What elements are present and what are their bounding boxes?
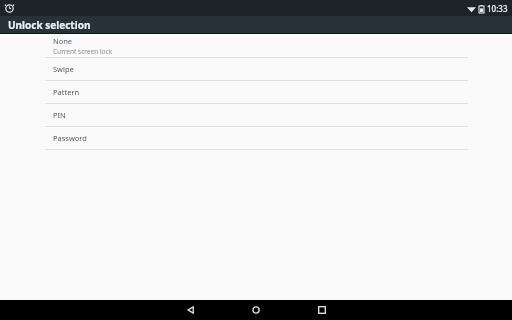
staticText: Pattern	[53, 87, 80, 97]
button[interactable]: Back	[178, 300, 204, 320]
staticText: None	[53, 36, 73, 46]
staticText: Unlock selection	[8, 18, 91, 32]
staticText: Swipe	[53, 64, 74, 74]
staticText: 10:33	[487, 3, 508, 14]
staticText: Current screen lock	[53, 47, 113, 56]
button[interactable]: Swipe	[0, 58, 512, 80]
button[interactable]: None	[0, 35, 512, 57]
button[interactable]: Password	[0, 127, 512, 149]
staticText: PIN	[53, 110, 66, 120]
button[interactable]: Pattern	[0, 81, 512, 103]
button[interactable]: Home	[243, 300, 269, 320]
button[interactable]: PIN	[0, 104, 512, 126]
staticText: Password	[53, 133, 87, 143]
button[interactable]: Recent apps	[309, 300, 335, 320]
